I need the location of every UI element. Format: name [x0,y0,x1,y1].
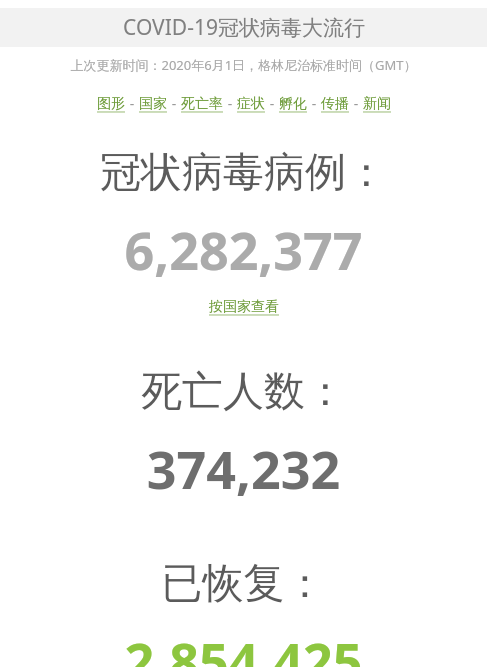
button[interactable]: 孵化 [278,95,308,113]
button[interactable]: 按国家查看 [209,298,279,316]
staticText: 图形 [97,95,125,113]
button[interactable]: 国家 [138,95,168,113]
staticText: 冠状病毒病例： [0,147,487,199]
staticText: 死亡率 [181,95,223,113]
button[interactable]: 死亡率 [180,95,224,113]
staticText: 死亡人数： [0,366,487,418]
button[interactable]: 新闻 [362,95,392,113]
staticText: 2,854,425 [0,625,487,667]
staticText: 症状 [237,95,265,113]
staticText: 按国家查看 [209,298,279,316]
staticText: 已恢复： [0,558,487,610]
staticText: 新闻 [363,95,391,113]
staticText: 6,282,377 [0,214,487,285]
button[interactable]: 传播 [320,95,350,113]
staticText: - [308,94,320,113]
staticText: - [350,94,362,113]
staticText: 传播 [321,95,349,113]
staticText: 孵化 [279,95,307,113]
staticText: COVID-19冠状病毒大流行 [123,13,365,42]
staticText: - [168,94,180,113]
staticText: 374,232 [0,433,487,504]
staticText: 国家 [139,95,167,113]
staticText: - [126,94,138,113]
button[interactable]: 图形 [96,95,126,113]
staticText: - [224,94,236,113]
staticText: 上次更新时间：2020年6月1日，格林尼治标准时间（GMT） [70,56,417,74]
button[interactable]: 症状 [236,95,266,113]
staticText: - [266,94,278,113]
